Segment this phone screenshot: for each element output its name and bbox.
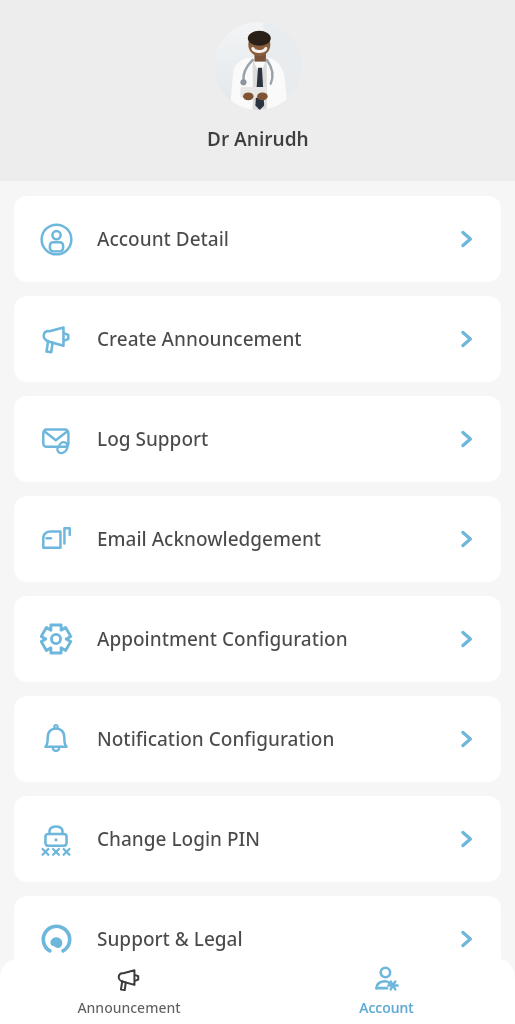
button[interactable]: Email Acknowledgement xyxy=(14,496,501,582)
staticText: Notification Configuration xyxy=(97,726,335,752)
staticText: Account xyxy=(359,998,414,1017)
button[interactable]: Account Detail xyxy=(14,196,501,282)
button[interactable]: Change Login PIN xyxy=(14,796,501,882)
staticText: Email Acknowledgement xyxy=(97,526,322,552)
staticText: Account Detail xyxy=(97,226,229,252)
staticText: Appointment Configuration xyxy=(97,626,348,652)
staticText: Dr Anirudh xyxy=(207,126,309,152)
staticText: Change Login PIN xyxy=(97,826,260,852)
button[interactable]: Create Announcement xyxy=(14,296,501,382)
staticText: Announcement xyxy=(77,998,181,1017)
button[interactable]: Profile photo xyxy=(214,22,302,110)
staticText: Log Support xyxy=(97,426,209,452)
button[interactable]: Notification Configuration xyxy=(14,696,501,782)
button[interactable]: Log Support xyxy=(14,396,501,482)
button[interactable]: Announcement xyxy=(0,958,257,1024)
staticText: Create Announcement xyxy=(97,326,302,352)
button[interactable]: Support & Legal xyxy=(14,896,501,982)
staticText: Support & Legal xyxy=(97,926,243,952)
button[interactable]: Appointment Configuration xyxy=(14,596,501,682)
button[interactable]: Account xyxy=(257,958,515,1024)
